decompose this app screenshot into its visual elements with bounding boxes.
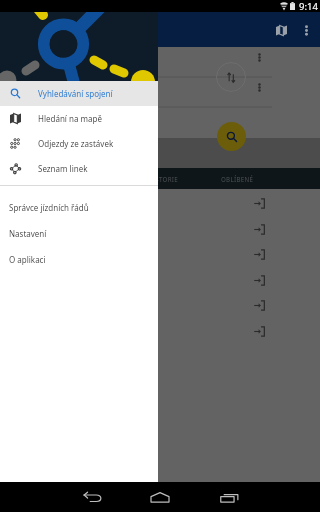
staticText: Nastavení xyxy=(9,228,47,239)
button[interactable]: O aplikaci xyxy=(0,246,158,272)
staticText: Hledání na mapě xyxy=(38,113,102,124)
button[interactable]: Use route xyxy=(0,266,320,291)
button[interactable]: Seznam linek xyxy=(0,156,158,181)
button[interactable]: OBLÍBENÉ xyxy=(221,175,254,183)
button[interactable]: Back xyxy=(72,487,112,507)
button[interactable]: Use route xyxy=(0,240,320,265)
button[interactable]: Use route xyxy=(0,291,320,316)
staticText: Vyhledávání spojení xyxy=(38,88,113,99)
button[interactable]: Use route xyxy=(0,215,320,240)
button[interactable]: Recent apps xyxy=(209,487,249,507)
button[interactable]: More options xyxy=(294,18,318,42)
button[interactable]: Map xyxy=(268,17,294,43)
button[interactable]: Search connection xyxy=(217,122,246,151)
button[interactable]: Use route xyxy=(0,317,320,342)
button[interactable]: Vyhledávání spojení xyxy=(0,81,158,106)
button[interactable]: Home xyxy=(140,487,180,507)
button[interactable]: Use route xyxy=(0,189,320,214)
button[interactable]: To options xyxy=(250,78,268,96)
staticText: Správce jízdních řádů xyxy=(9,202,89,213)
staticText: Odjezdy ze zastávek xyxy=(38,138,114,149)
button[interactable]: Use route xyxy=(253,223,265,235)
button[interactable]: Správce jízdních řádů xyxy=(0,194,158,220)
button[interactable]: Use route xyxy=(253,274,265,286)
staticText: O aplikaci xyxy=(9,254,46,265)
button[interactable]: Odjezdy ze zastávek xyxy=(0,131,158,156)
button[interactable]: HISTORIE xyxy=(148,175,178,183)
button[interactable]: Hledání na mapě xyxy=(0,106,158,131)
button[interactable]: From options xyxy=(250,48,268,66)
button[interactable]: Use route xyxy=(253,325,265,337)
button[interactable]: Use route xyxy=(253,248,265,260)
button[interactable]: Use route xyxy=(253,299,265,311)
button[interactable]: Nastavení xyxy=(0,220,158,246)
staticText: Seznam linek xyxy=(38,163,88,174)
staticText: 9:14 xyxy=(299,0,318,12)
button[interactable]: Use route xyxy=(253,197,265,209)
button[interactable]: Swap from and to xyxy=(216,62,246,92)
